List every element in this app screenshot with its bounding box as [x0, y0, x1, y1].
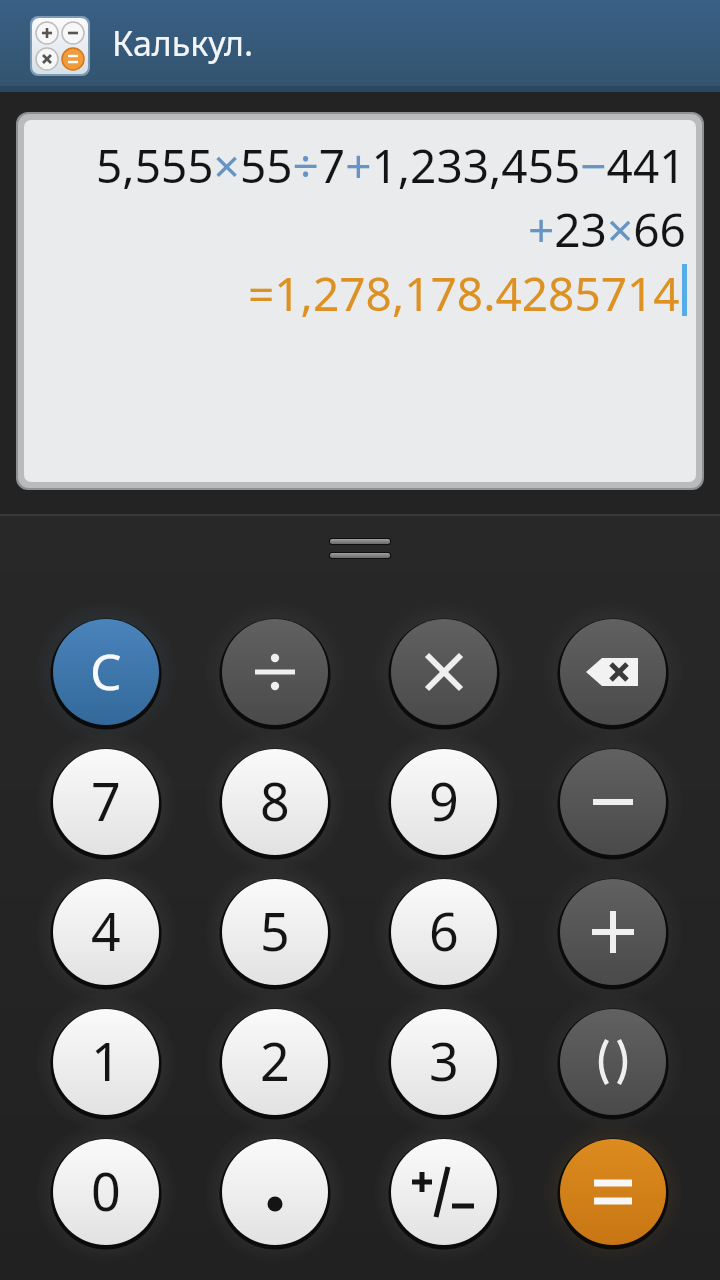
button[interactable]: Parentheses [560, 1009, 666, 1115]
button[interactable]: 9 [391, 749, 497, 855]
button[interactable]: Multiply [391, 619, 497, 725]
button[interactable]: 5 [222, 879, 328, 985]
button[interactable]: 6 [391, 879, 497, 985]
button[interactable]: Plus minus [391, 1139, 497, 1245]
button[interactable]: 0 [53, 1139, 159, 1245]
button[interactable]: 3 [391, 1009, 497, 1115]
button[interactable]: Divide [222, 619, 328, 725]
button[interactable]: Калькулятор [32, 18, 88, 74]
button[interactable]: Equals [560, 1139, 666, 1245]
button[interactable]: Display [16, 112, 704, 490]
button[interactable]: Minus [560, 749, 666, 855]
button[interactable]: Plus [560, 879, 666, 985]
button[interactable]: 8 [222, 749, 328, 855]
button[interactable]: 1 [53, 1009, 159, 1115]
button[interactable]: C [53, 619, 159, 725]
button[interactable]: 2 [222, 1009, 328, 1115]
button[interactable]: 7 [53, 749, 159, 855]
button[interactable]: 4 [53, 879, 159, 985]
button[interactable]: Backspace [560, 619, 666, 725]
button[interactable]: Decimal point [222, 1139, 328, 1245]
